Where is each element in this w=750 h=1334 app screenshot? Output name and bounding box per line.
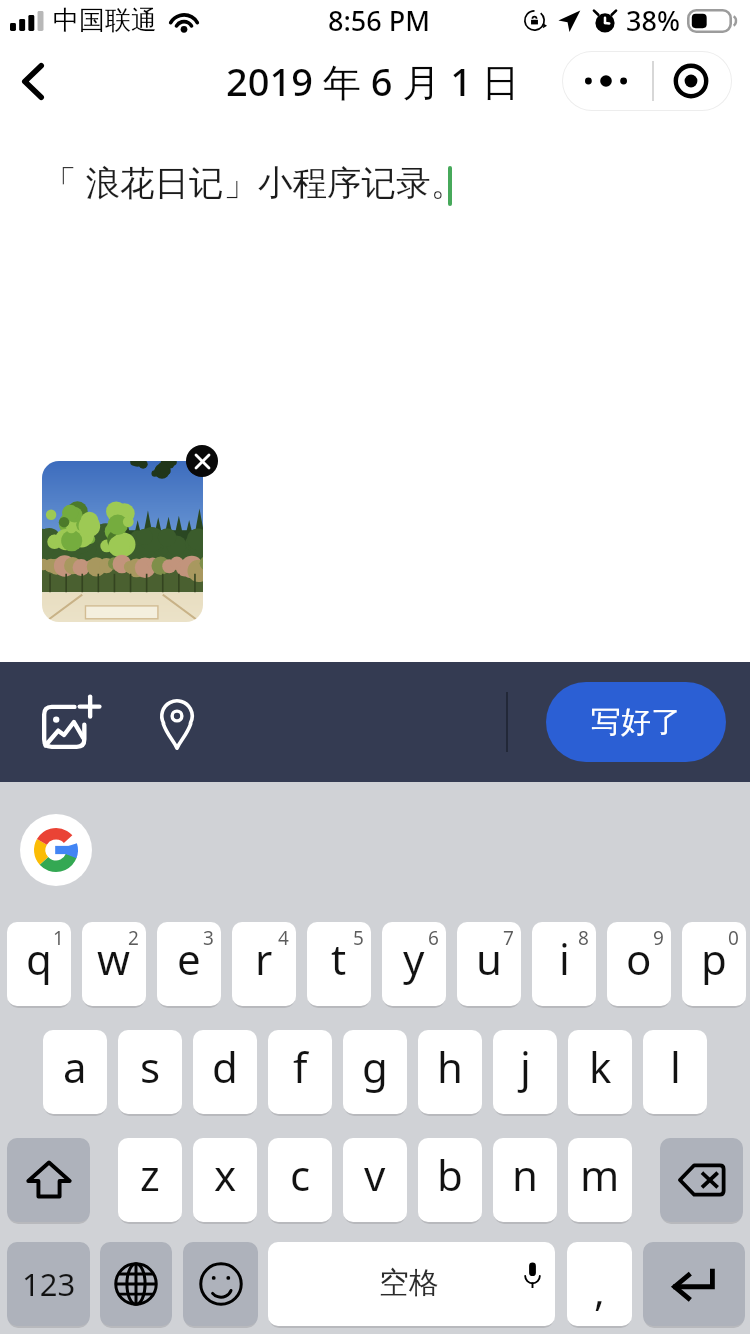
button[interactable]: 写好了 bbox=[546, 682, 726, 762]
staticText: p bbox=[701, 930, 727, 987]
staticText: 写好了 bbox=[591, 703, 681, 741]
button[interactable]: Emoji bbox=[183, 1242, 258, 1326]
button[interactable]: g bbox=[343, 1030, 407, 1114]
staticText: 38% bbox=[626, 2, 680, 39]
staticText: u bbox=[476, 930, 502, 987]
button[interactable]: z bbox=[118, 1138, 182, 1222]
staticText: 123 bbox=[22, 1263, 76, 1305]
staticText: h bbox=[437, 1038, 463, 1095]
button[interactable]: h bbox=[418, 1030, 482, 1114]
button[interactable]: More bbox=[562, 51, 649, 111]
staticText: a bbox=[63, 1038, 87, 1095]
button[interactable]: l bbox=[643, 1030, 707, 1114]
button[interactable]: Google bbox=[20, 814, 92, 886]
staticText: n bbox=[512, 1146, 538, 1203]
staticText: 1 bbox=[53, 925, 64, 951]
staticText: 8 bbox=[578, 925, 589, 951]
button[interactable]: j bbox=[493, 1030, 557, 1114]
staticText: d bbox=[212, 1038, 238, 1095]
staticText: q bbox=[26, 930, 52, 987]
staticText: o bbox=[626, 930, 652, 987]
button[interactable]: Close mini program bbox=[649, 51, 732, 111]
button[interactable]: i bbox=[532, 922, 596, 1006]
button[interactable]: d bbox=[193, 1030, 257, 1114]
button[interactable]: s bbox=[118, 1030, 182, 1114]
button[interactable]: Shift bbox=[7, 1138, 90, 1222]
button[interactable]: b bbox=[418, 1138, 482, 1222]
button[interactable]: m bbox=[568, 1138, 632, 1222]
staticText: w bbox=[97, 930, 131, 987]
staticText: c bbox=[290, 1146, 311, 1203]
staticText: 空格 bbox=[379, 1264, 439, 1302]
button[interactable]: 123 bbox=[7, 1242, 90, 1326]
staticText: v bbox=[364, 1146, 386, 1203]
staticText: e bbox=[177, 930, 201, 987]
button[interactable]: Change keyboard bbox=[100, 1242, 172, 1326]
staticText: j bbox=[520, 1038, 531, 1095]
staticText: b bbox=[437, 1146, 463, 1203]
staticText: 2 bbox=[128, 925, 139, 951]
button[interactable]: k bbox=[568, 1030, 632, 1114]
button[interactable]: Add photo bbox=[27, 678, 115, 766]
staticText: x bbox=[214, 1146, 237, 1203]
staticText: 6 bbox=[428, 925, 439, 951]
button[interactable]: v bbox=[343, 1138, 407, 1222]
button[interactable]: p bbox=[682, 922, 746, 1006]
staticText: l bbox=[670, 1038, 681, 1095]
button[interactable]: e bbox=[157, 922, 221, 1006]
staticText: 0 bbox=[728, 925, 739, 951]
button[interactable]: w bbox=[82, 922, 146, 1006]
button[interactable]: y bbox=[382, 922, 446, 1006]
button[interactable]: a bbox=[43, 1030, 107, 1114]
button[interactable]: Enter bbox=[643, 1242, 745, 1326]
staticText: m bbox=[580, 1146, 620, 1203]
button[interactable]: n bbox=[493, 1138, 557, 1222]
button[interactable]: Attached photo bbox=[42, 461, 203, 622]
button[interactable]: Add location bbox=[133, 678, 221, 766]
staticText: y bbox=[403, 930, 425, 987]
staticText: g bbox=[362, 1038, 388, 1095]
staticText: 8:56 PM bbox=[328, 2, 430, 39]
button[interactable]: c bbox=[268, 1138, 332, 1222]
staticText: 3 bbox=[203, 925, 214, 951]
staticText: 5 bbox=[353, 925, 364, 951]
button[interactable]: q bbox=[7, 922, 71, 1006]
button[interactable]: u bbox=[457, 922, 521, 1006]
button[interactable]: o bbox=[607, 922, 671, 1006]
staticText: i bbox=[559, 930, 570, 987]
staticText: f bbox=[293, 1038, 308, 1095]
button[interactable]: , bbox=[567, 1242, 632, 1326]
staticText: 中国联通 bbox=[53, 4, 157, 37]
button[interactable]: f bbox=[268, 1030, 332, 1114]
button[interactable]: x bbox=[193, 1138, 257, 1222]
staticText: 7 bbox=[503, 925, 514, 951]
staticText: 9 bbox=[653, 925, 664, 951]
button[interactable]: r bbox=[232, 922, 296, 1006]
staticText: , bbox=[594, 1263, 605, 1317]
staticText: t bbox=[331, 930, 347, 987]
staticText: r bbox=[255, 930, 273, 987]
staticText: k bbox=[589, 1038, 612, 1095]
staticText: 4 bbox=[278, 925, 289, 951]
button[interactable]: Backspace bbox=[660, 1138, 743, 1222]
button[interactable]: Back bbox=[0, 45, 69, 117]
button[interactable]: 空格 bbox=[268, 1242, 555, 1326]
staticText: 「 浪花日记」小程序记录。 bbox=[42, 158, 465, 205]
staticText: s bbox=[140, 1038, 161, 1095]
staticText: 2019 年 6 月 1 日 bbox=[226, 55, 520, 107]
staticText: z bbox=[140, 1146, 160, 1203]
button[interactable]: t bbox=[307, 922, 371, 1006]
button[interactable]: Remove photo bbox=[186, 445, 218, 477]
